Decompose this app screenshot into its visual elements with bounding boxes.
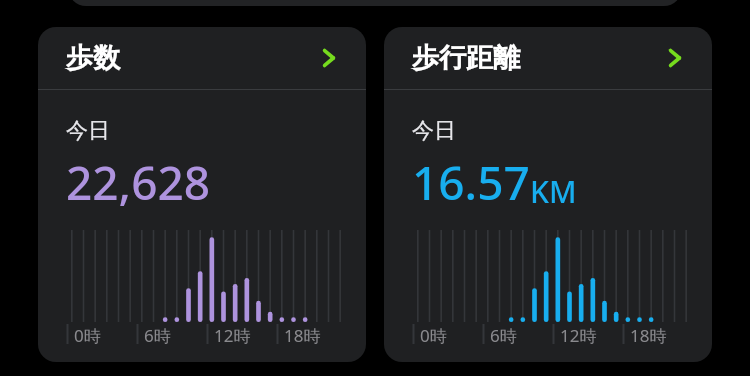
staticText: 12時 (560, 324, 597, 347)
staticText: 12時 (214, 324, 251, 347)
staticText: 今日 (66, 117, 110, 145)
staticText: 歩行距離 (412, 41, 520, 75)
staticText: 今日 (412, 117, 456, 145)
button[interactable]: 歩数 (38, 27, 366, 362)
staticText: 22,628 (66, 151, 211, 214)
button[interactable]: 詳細を表示 (660, 43, 690, 73)
staticText: KM (530, 171, 577, 212)
staticText: 歩数 (66, 41, 120, 75)
staticText: 0時 (420, 324, 447, 347)
button[interactable] (68, 0, 682, 6)
staticText: 18時 (284, 324, 321, 347)
staticText: 0時 (74, 324, 101, 347)
button[interactable]: 詳細を表示 (314, 43, 344, 73)
button[interactable]: 歩行距離 (384, 27, 712, 362)
staticText: 6時 (490, 324, 517, 347)
staticText: 16.57 (412, 151, 530, 214)
staticText: 6時 (144, 324, 171, 347)
staticText: 18時 (630, 324, 667, 347)
